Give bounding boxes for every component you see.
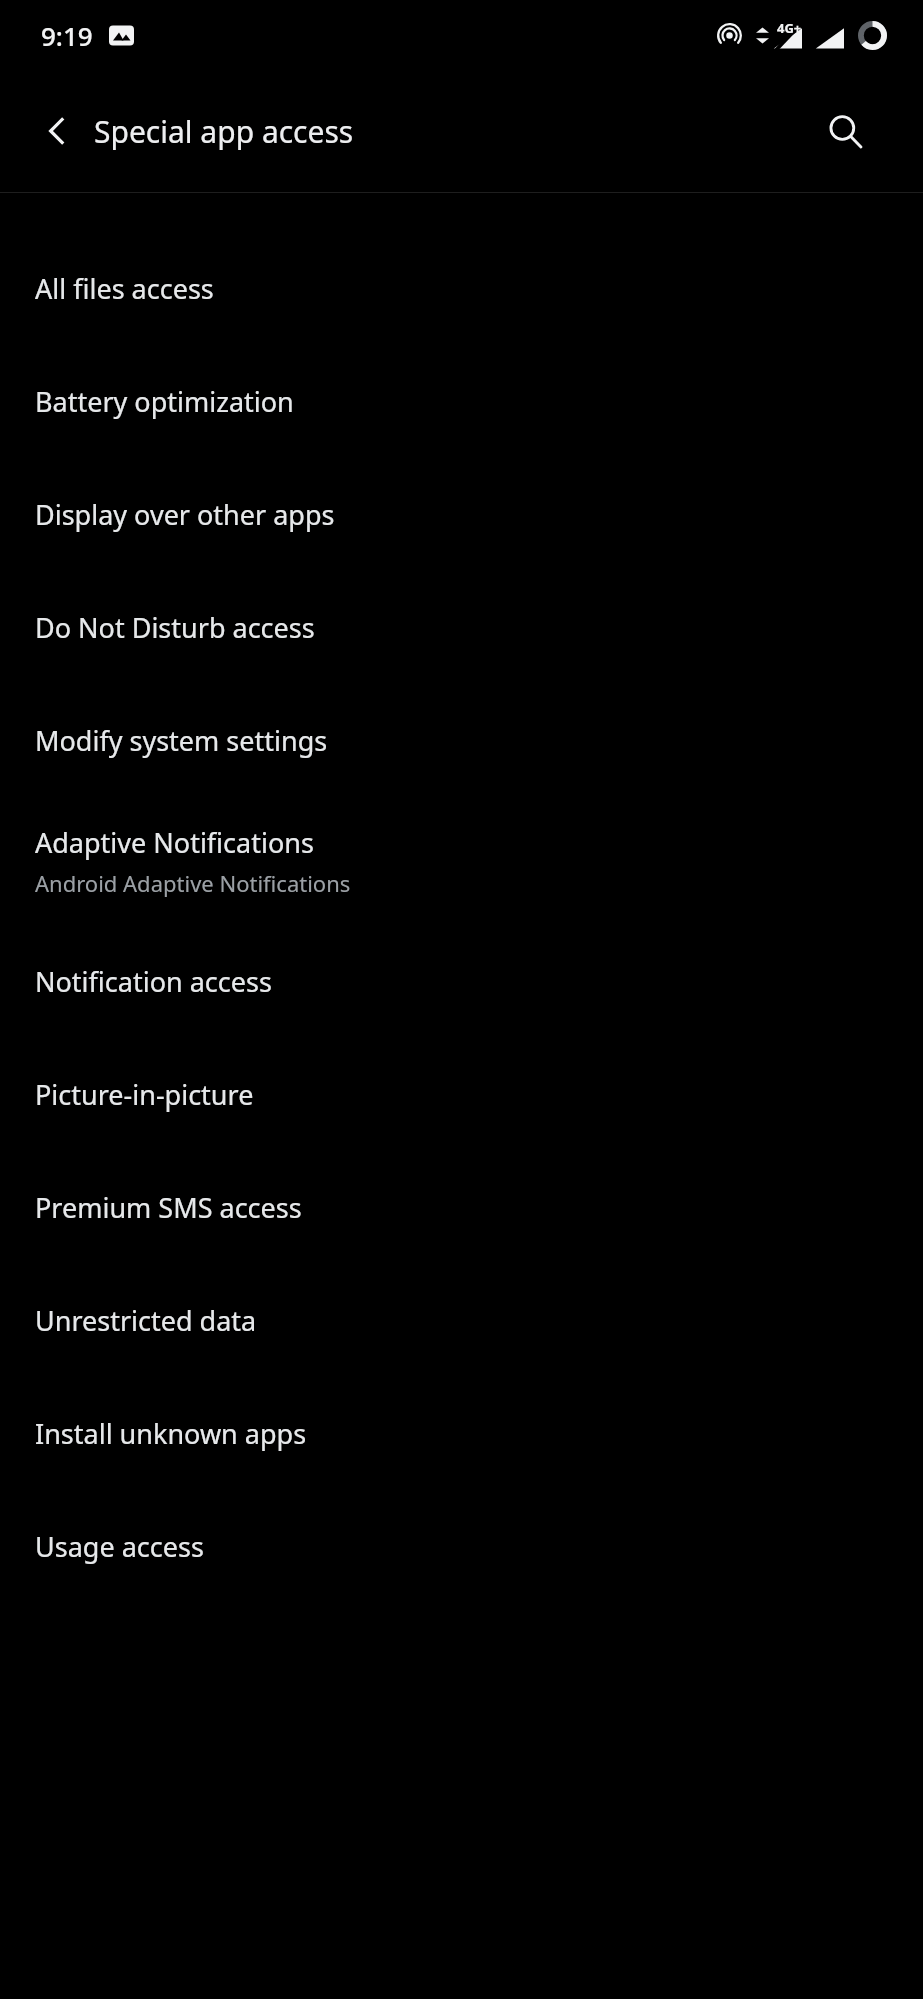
staticText: Notification access bbox=[35, 963, 272, 1000]
button[interactable]: Modify system settings bbox=[0, 684, 923, 797]
button[interactable]: Notification access bbox=[0, 925, 923, 1038]
button[interactable]: Navigate up bbox=[22, 96, 92, 166]
staticText: Install unknown apps bbox=[35, 1415, 307, 1452]
staticText: Picture-in-picture bbox=[35, 1076, 254, 1113]
staticText: Android Adaptive Notifications bbox=[35, 868, 351, 898]
button[interactable]: Do Not Disturb access bbox=[0, 571, 923, 684]
button[interactable]: Picture-in-picture bbox=[0, 1038, 923, 1151]
staticText: Special app access bbox=[94, 111, 354, 152]
button[interactable]: Premium SMS access bbox=[0, 1151, 923, 1264]
button[interactable]: Display over other apps bbox=[0, 458, 923, 571]
staticText: All files access bbox=[35, 270, 214, 307]
button[interactable]: Unrestricted data bbox=[0, 1264, 923, 1377]
staticText: Display over other apps bbox=[35, 496, 335, 533]
button[interactable]: Search bbox=[810, 96, 880, 166]
staticText: 9:19 bbox=[41, 18, 93, 53]
staticText: 4G+ bbox=[777, 19, 802, 37]
button[interactable]: Install unknown apps bbox=[0, 1377, 923, 1490]
staticText: Adaptive Notifications bbox=[35, 824, 314, 861]
staticText: Modify system settings bbox=[35, 722, 328, 759]
staticText: Premium SMS access bbox=[35, 1189, 302, 1226]
button[interactable]: Adaptive Notifications bbox=[0, 797, 923, 925]
staticText: Do Not Disturb access bbox=[35, 609, 315, 646]
button[interactable]: Battery optimization bbox=[0, 345, 923, 458]
button[interactable]: Usage access bbox=[0, 1490, 923, 1603]
staticText: Usage access bbox=[35, 1528, 204, 1565]
staticText: Unrestricted data bbox=[35, 1302, 257, 1339]
staticText: Battery optimization bbox=[35, 383, 294, 420]
button[interactable]: All files access bbox=[0, 232, 923, 345]
